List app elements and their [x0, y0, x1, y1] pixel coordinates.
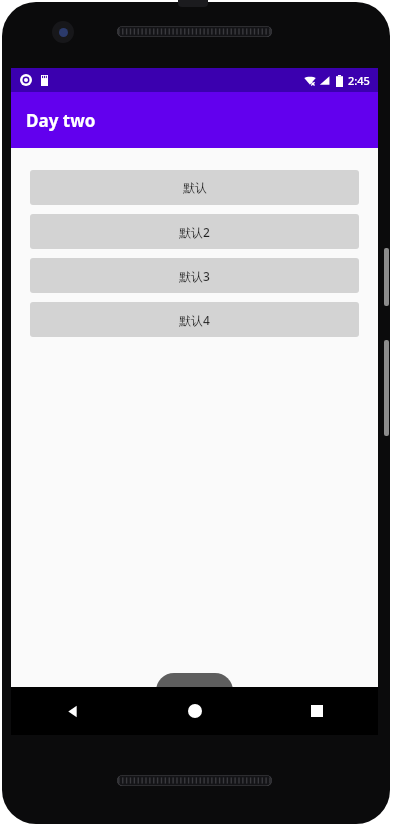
- staticText: 默认2: [179, 224, 210, 240]
- staticText: 默认4: [179, 312, 210, 328]
- button[interactable]: 默认: [30, 170, 359, 205]
- staticText: Toast: [178, 682, 211, 700]
- button[interactable]: 默认4: [30, 302, 359, 337]
- button[interactable]: Back: [11, 687, 134, 735]
- button[interactable]: Recent apps: [256, 687, 378, 735]
- staticText: 默认3: [179, 268, 210, 284]
- button[interactable]: 默认3: [30, 258, 359, 293]
- staticText: 2:45: [348, 73, 370, 88]
- button[interactable]: Toast: [156, 673, 233, 709]
- button[interactable]: 默认2: [30, 214, 359, 249]
- staticText: 默认: [183, 180, 207, 195]
- button[interactable]: Home: [134, 687, 256, 735]
- staticText: Day two: [26, 109, 96, 132]
